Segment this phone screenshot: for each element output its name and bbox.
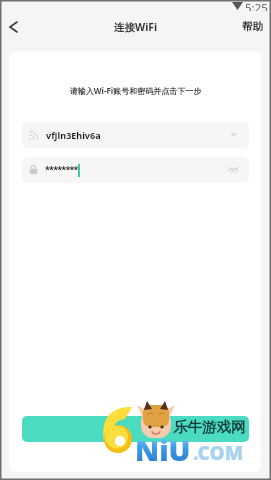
- staticText: 5:25: [245, 0, 268, 11]
- staticText: .COM: [193, 440, 244, 466]
- staticText: 连接WiFi: [114, 20, 158, 34]
- staticText: 请输入Wi-Fi账号和密码并点击下一步: [0, 85, 271, 96]
- staticText: ********: [45, 163, 78, 175]
- staticText: 帮助: [242, 20, 263, 33]
- staticText: 乐牛游戏网: [173, 418, 246, 436]
- button[interactable]: ********: [22, 157, 249, 183]
- button[interactable]: Show password: [226, 163, 240, 177]
- button[interactable]: vfJln3Ehiv6a: [22, 122, 249, 148]
- button[interactable]: Back: [0, 13, 27, 40]
- button[interactable]: [22, 416, 249, 442]
- staticText: NiU: [135, 430, 191, 469]
- staticText: vfJln3Ehiv6a: [46, 129, 101, 141]
- button[interactable]: 帮助: [234, 13, 271, 40]
